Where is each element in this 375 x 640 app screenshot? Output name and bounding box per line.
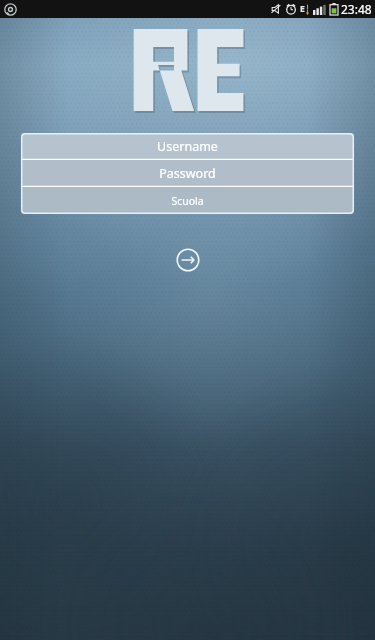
staticText: E <box>300 3 305 15</box>
staticText: Password <box>159 165 216 182</box>
button[interactable]: Accedi <box>170 242 206 278</box>
staticText: Username <box>157 138 218 155</box>
staticText: Scuola <box>171 194 204 208</box>
staticText: 23:48 <box>341 1 372 17</box>
button[interactable]: Username <box>21 133 354 160</box>
button[interactable]: Password <box>21 160 354 187</box>
button[interactable]: Scuola <box>21 187 354 214</box>
